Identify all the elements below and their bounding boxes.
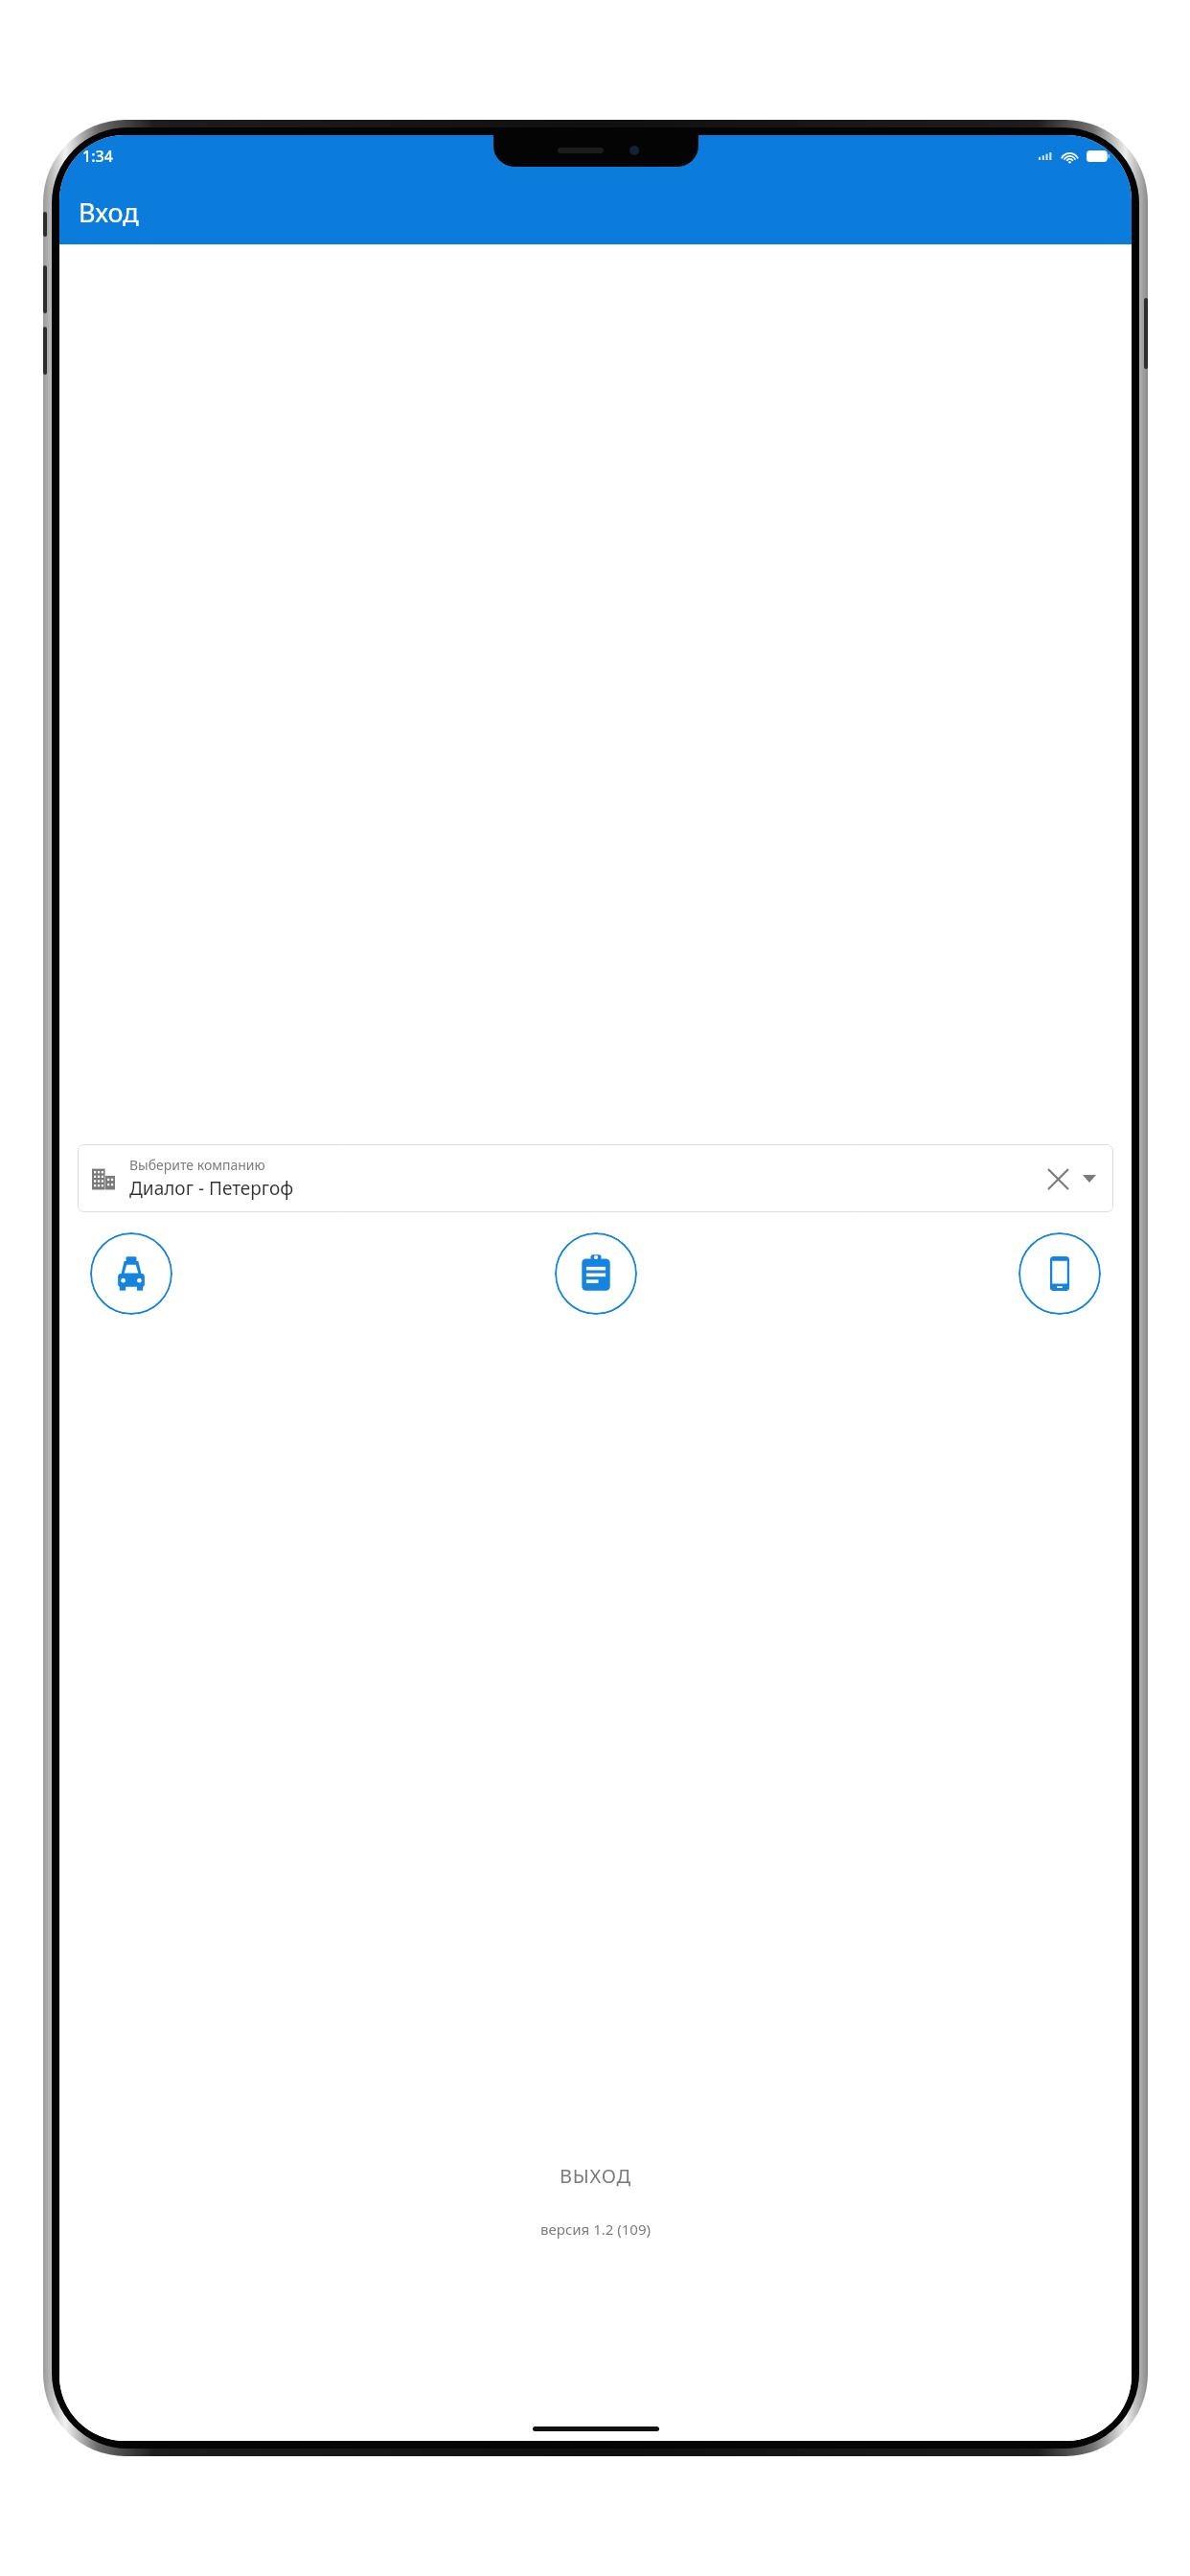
button[interactable]: Вызвать такси — [90, 1232, 172, 1315]
staticText: Диалог - Петергоф — [129, 1176, 294, 1201]
button[interactable]: Выберите компанию — [78, 1144, 1113, 1212]
staticText: ВЫХОД — [560, 2163, 631, 2189]
staticText: Выберите компанию — [129, 1156, 265, 1174]
button[interactable]: ВЫХОД — [59, 2154, 1132, 2197]
button[interactable]: Открыть список — [1075, 1164, 1104, 1193]
button[interactable]: Телефон — [1018, 1232, 1101, 1315]
button[interactable]: Заказы — [555, 1232, 637, 1315]
button[interactable]: Очистить — [1041, 1161, 1075, 1196]
staticText: Вход — [79, 195, 139, 230]
staticText: 1:34 — [82, 146, 113, 167]
staticText: версия 1.2 (109) — [59, 2219, 1132, 2239]
